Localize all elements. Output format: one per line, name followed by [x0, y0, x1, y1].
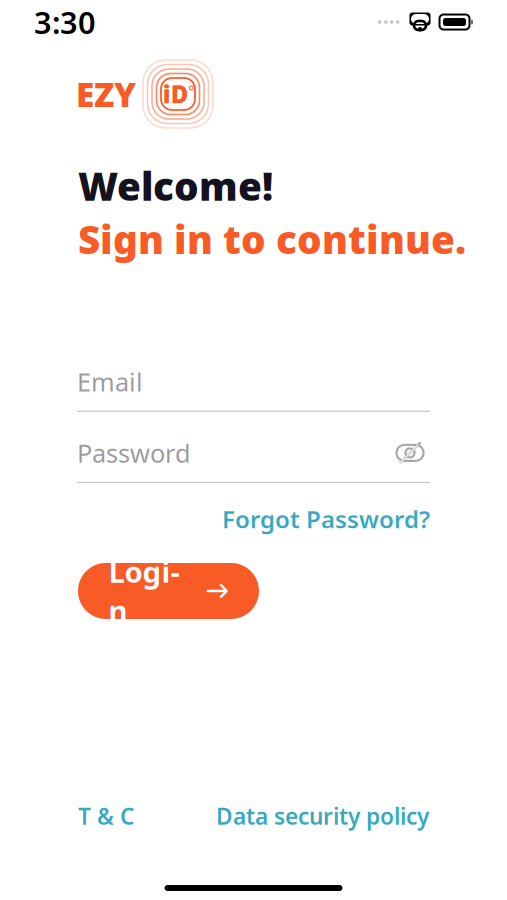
staticText: EZY — [76, 72, 136, 116]
staticText: Password — [77, 436, 191, 470]
button[interactable]: T & C — [78, 795, 134, 837]
staticText: Login — [108, 552, 179, 630]
button[interactable]: Show password — [390, 436, 430, 470]
button[interactable]: Forgot Password? — [222, 497, 430, 541]
staticText: Sign in to continue. — [78, 213, 466, 265]
staticText: T & C — [78, 801, 134, 831]
staticText: iD — [163, 78, 189, 110]
staticText: Welcome! — [78, 160, 273, 211]
button[interactable]: Data security policy — [216, 795, 429, 837]
staticText: Email — [77, 365, 143, 398]
staticText: 3:30 — [34, 2, 96, 42]
button[interactable]: Login — [78, 563, 259, 619]
staticText: Forgot Password? — [222, 503, 430, 535]
staticText: Data security policy — [216, 801, 429, 831]
